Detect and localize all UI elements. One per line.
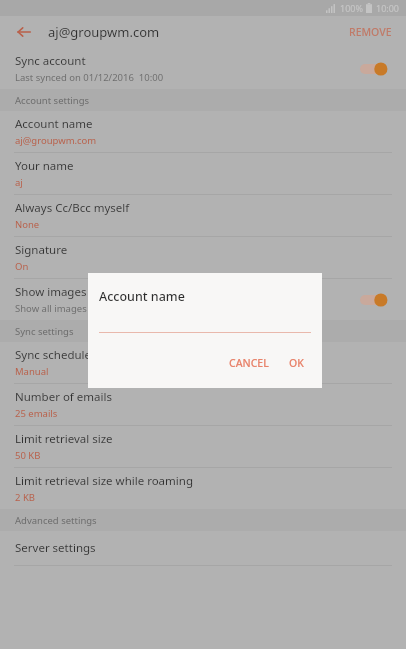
staticText: Always Cc/Bcc myself (15, 200, 130, 216)
staticText: aj@groupwm.com (48, 23, 160, 41)
staticText: Signature (15, 242, 68, 258)
staticText: Sync account (15, 53, 86, 69)
staticText: 25 emails (15, 407, 58, 420)
button[interactable]: OK (283, 352, 310, 374)
button[interactable]: Sync account (0, 48, 406, 89)
button[interactable]: Toggle (360, 290, 394, 310)
button[interactable]: Number of emails (0, 384, 406, 425)
staticText: Limit retrieval size (15, 431, 113, 447)
button[interactable]: Account name (0, 111, 406, 152)
staticText: aj (15, 176, 23, 189)
button[interactable]: Show images (0, 279, 406, 320)
staticText: None (15, 218, 40, 231)
staticText: Show images (15, 284, 87, 300)
staticText: Your name (15, 158, 74, 174)
staticText: 50 KB (15, 449, 41, 462)
button[interactable]: Back (12, 20, 36, 44)
button[interactable]: Sync schedule (0, 342, 406, 383)
button[interactable]: Your name (0, 153, 406, 194)
staticText: Advanced settings (15, 514, 97, 527)
staticText: Limit retrieval size while roaming (15, 473, 193, 489)
staticText: CANCEL (229, 356, 269, 370)
staticText: Sync settings (15, 325, 74, 338)
staticText: OK (289, 356, 304, 370)
staticText: Server settings (15, 540, 96, 556)
button[interactable]: REMOVE (345, 19, 396, 45)
staticText: Number of emails (15, 389, 112, 405)
staticText: Manual (15, 365, 49, 378)
staticText: Show all images in... (15, 302, 106, 315)
button[interactable]: Always Cc/Bcc myself (0, 195, 406, 236)
button[interactable]: Limit retrieval size (0, 426, 406, 467)
staticText: Account settings (15, 94, 90, 107)
staticText: 10:00 (376, 2, 400, 14)
button[interactable]: CANCEL (223, 352, 275, 374)
staticText: Account name (15, 116, 93, 132)
staticText: aj@groupwm.com (15, 134, 97, 147)
button[interactable]: Signature (0, 237, 406, 278)
button[interactable]: Toggle (360, 59, 394, 79)
staticText: REMOVE (349, 25, 392, 39)
staticText: 100% (340, 2, 363, 14)
staticText: Last synced on 01/12/2016 10:00 (15, 71, 164, 84)
staticText: Sync schedule (15, 347, 92, 363)
staticText: On (15, 260, 29, 273)
button[interactable]: Server settings (0, 531, 406, 565)
staticText: Account name (99, 288, 185, 305)
button[interactable]: Limit retrieval size while roaming (0, 468, 406, 509)
staticText: 2 KB (15, 491, 35, 504)
